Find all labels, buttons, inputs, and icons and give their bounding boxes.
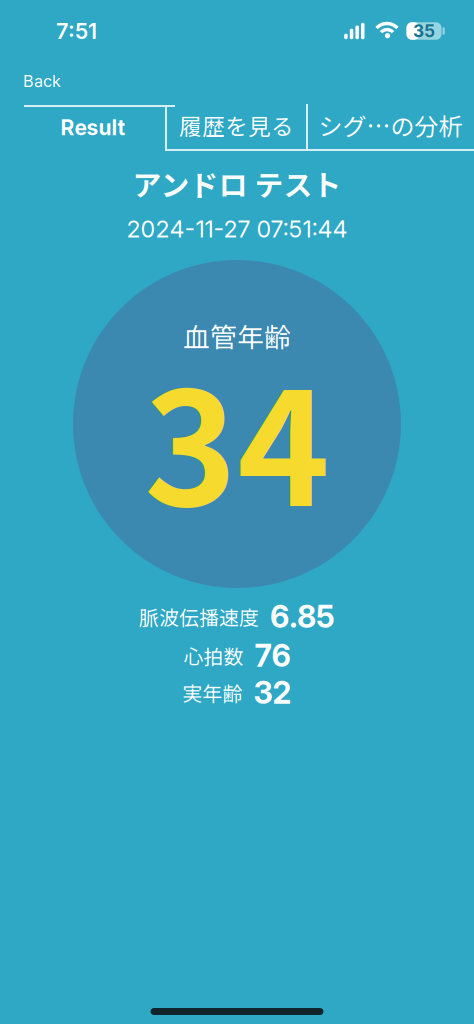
staticText: Result [60,115,125,140]
staticText: 6.85 [270,598,335,635]
staticText: Back [23,71,61,91]
staticText: 32 [253,674,291,711]
button[interactable]: Back [23,71,61,91]
staticText: 34 [144,324,330,551]
staticText: 履歴を見る [179,109,294,141]
staticText: 76 [254,637,290,674]
staticText: 心拍数 [183,641,243,670]
staticText: シグ…の分析 [318,108,462,142]
button[interactable]: シグ…の分析 [307,104,474,151]
staticText: アンドロ テスト [132,163,341,204]
button[interactable]: Result [24,104,166,151]
staticText: 35 [413,20,435,41]
staticText: 実年齢 [182,678,242,707]
staticText: 7:51 [56,18,97,44]
staticText: 血管年齢 [183,316,291,355]
button[interactable]: 履歴を見る [166,104,307,151]
staticText: 脈波伝播速度 [139,602,259,631]
staticText: 2024-11-27 07:51:44 [126,215,347,243]
